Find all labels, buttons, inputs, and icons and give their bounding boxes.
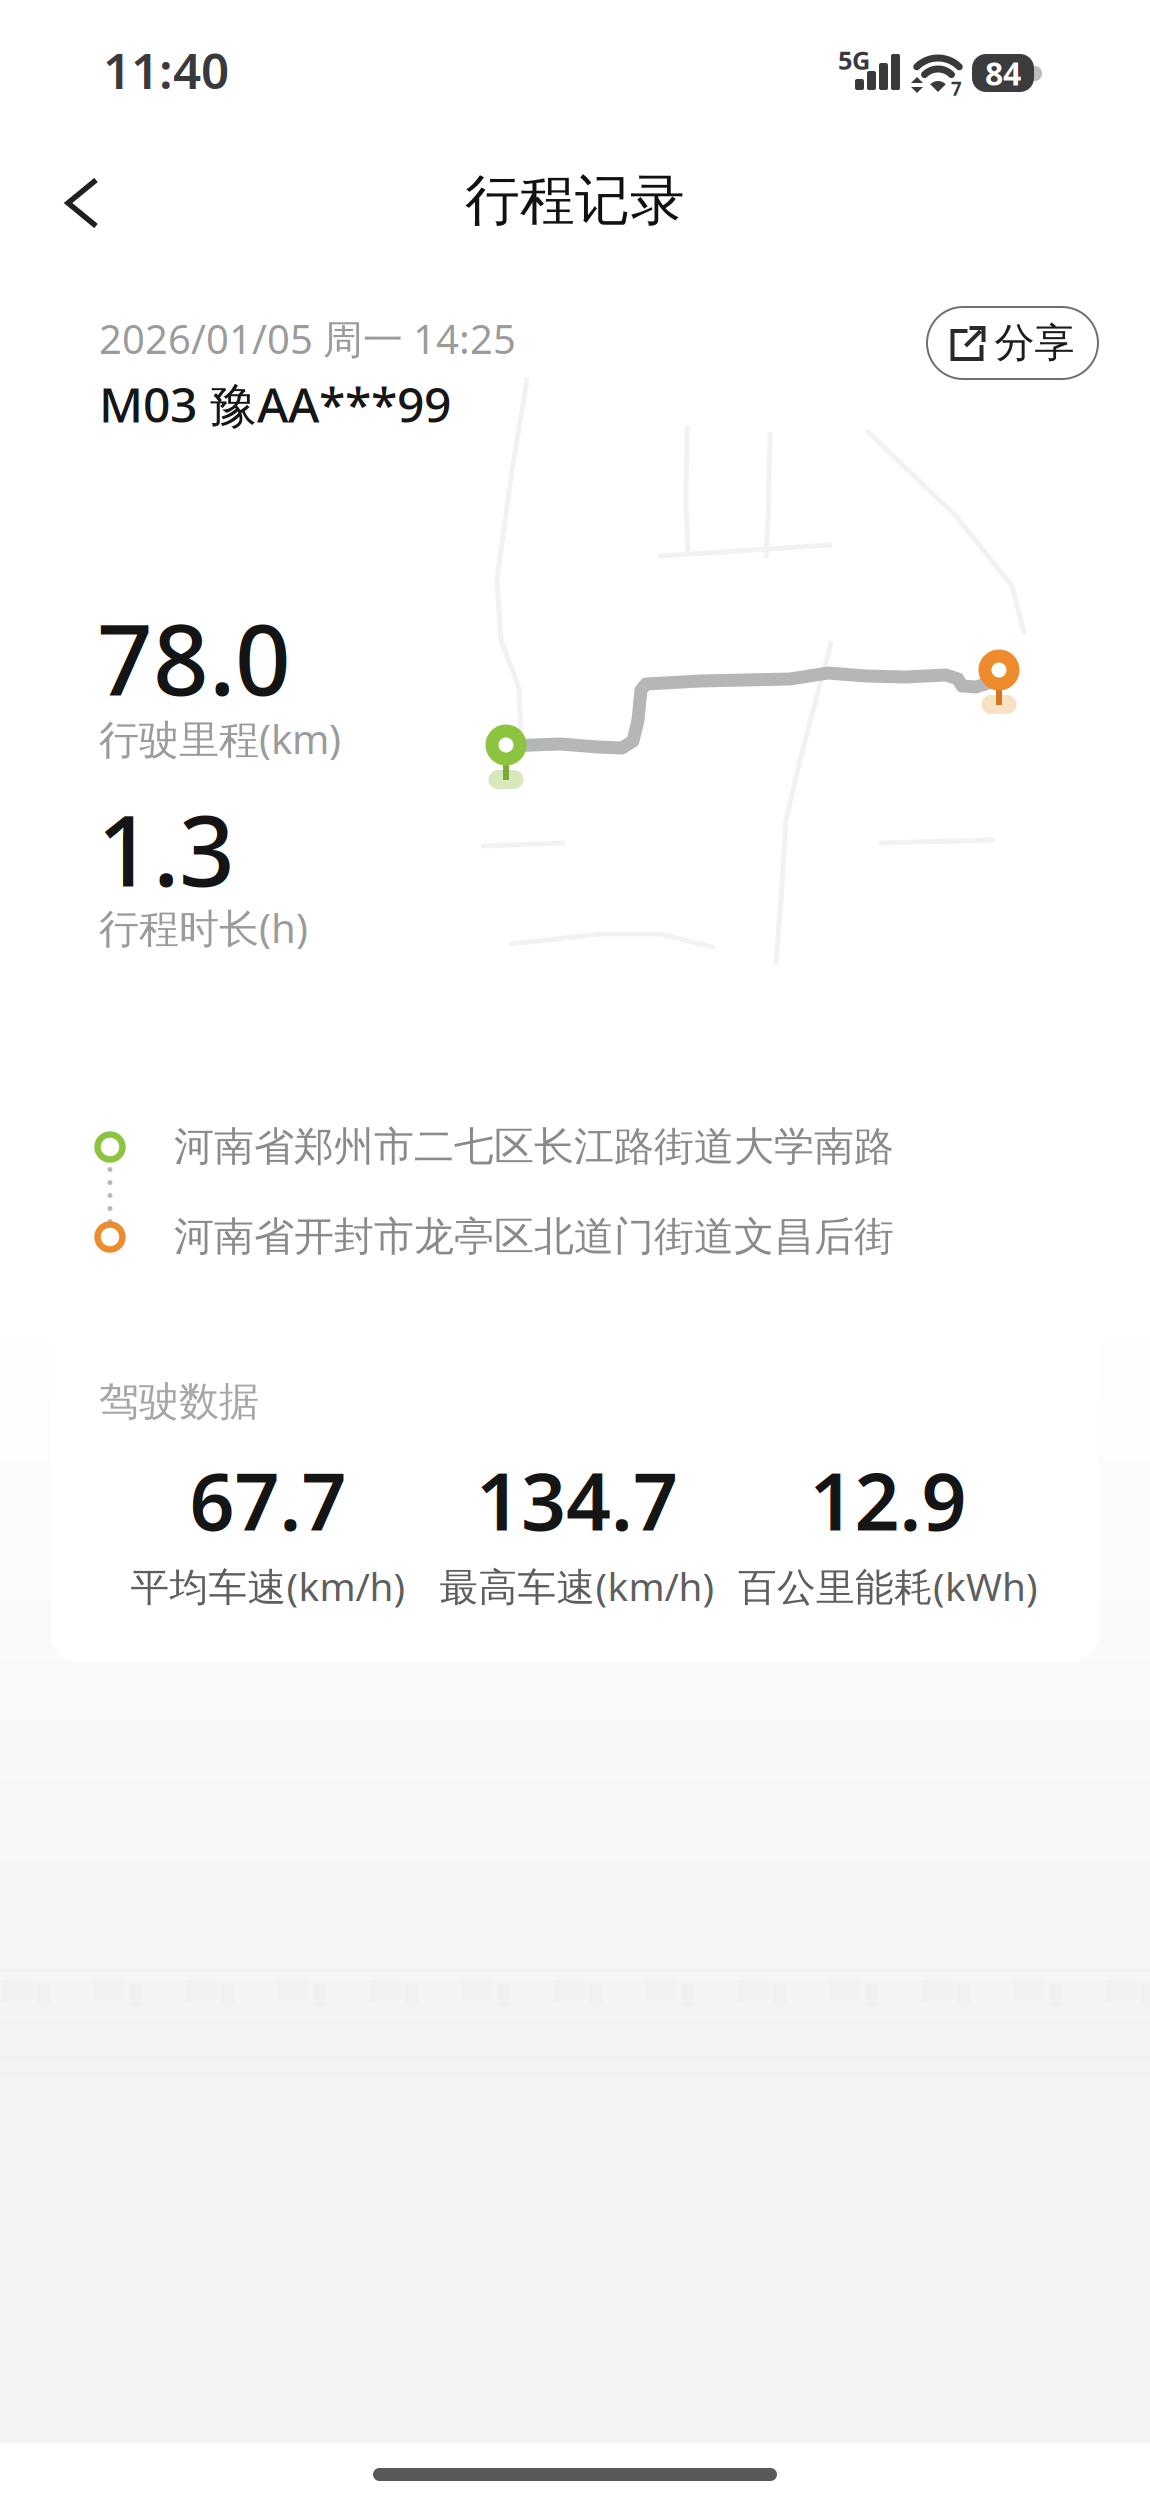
staticText: M03 豫AA***99 (99, 372, 451, 436)
staticText: 分享 (994, 318, 1074, 367)
staticText: 行程时长(h) (99, 901, 308, 954)
staticText: 河南省郑州市二七区长江路街道大学南路 (174, 1122, 894, 1171)
staticText: 行程记录 (465, 167, 685, 234)
staticText: 行驶里程(km) (99, 712, 341, 765)
button[interactable]: 分享 (927, 307, 1098, 379)
staticText: 134.7 (476, 1448, 678, 1552)
staticText: 2026/01/05 周一 14:25 (99, 312, 516, 365)
staticText: 78.0 (97, 593, 291, 722)
button[interactable]: Back (58, 175, 106, 229)
staticText: 5G (838, 43, 870, 77)
staticText: 最高车速(km/h) (439, 1560, 714, 1612)
staticText: 1.3 (97, 784, 235, 913)
staticText: 驾驶数据 (99, 1377, 259, 1426)
staticText: 河南省开封市龙亭区北道门街道文昌后街 (174, 1212, 894, 1261)
staticText: 67.7 (189, 1448, 346, 1552)
staticText: 百公里能耗(kWh) (738, 1560, 1038, 1612)
staticText: 84 (985, 52, 1021, 94)
staticText: 11:40 (103, 37, 229, 102)
staticText: 平均车速(km/h) (130, 1560, 405, 1612)
staticText: 12.9 (809, 1448, 966, 1552)
staticText: 7 (951, 76, 962, 101)
